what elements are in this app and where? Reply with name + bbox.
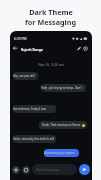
button[interactable]: Alternating two copiers right — [44, 149, 79, 157]
staticText: Haha, seriously, this brief is still rai… — [13, 137, 56, 141]
staticText: Yeah, just trying to sleep. Don't sleep — [41, 86, 86, 90]
button[interactable]: Hey, are you still awake? — [13, 72, 38, 80]
staticText: Burned man, Today I was wondering about … — [13, 107, 56, 111]
button[interactable]: Yeah, just trying to sleep. Don't sleep — [41, 84, 86, 92]
staticText: Nov 16, 3:24 am — [10, 62, 92, 67]
staticText: Write a message — [36, 168, 60, 172]
button[interactable]: Burned man, Today I was wondering about … — [13, 105, 56, 113]
button[interactable]: Rajesh Banga — [13, 44, 88, 53]
staticText: Rajesh Banga — [21, 47, 43, 51]
button[interactable]: Dude, That meetup on Venus — [39, 121, 87, 129]
button[interactable] — [12, 166, 20, 174]
staticText: 6:39 PM — [14, 36, 27, 40]
staticText: Dark Theme — [29, 7, 73, 17]
button[interactable] — [22, 166, 30, 174]
button[interactable]: Haha, seriously, this brief is still rai… — [13, 135, 56, 143]
button[interactable] — [79, 164, 90, 175]
staticText: Alternating two copiers right — [44, 151, 79, 155]
staticText: Hey, are you still awake? — [13, 74, 38, 78]
button[interactable]: Write a message — [32, 164, 77, 175]
staticText: Dude, That meetup on Venus — [42, 123, 81, 127]
staticText: for Messaging — [25, 17, 76, 27]
